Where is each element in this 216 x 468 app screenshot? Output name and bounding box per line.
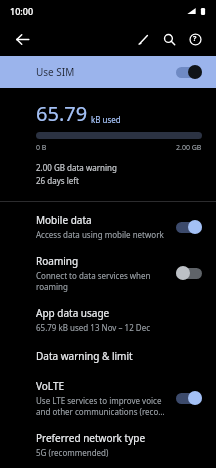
staticText: Mobile data (36, 213, 92, 227)
staticText: Access data using mobile network (36, 229, 164, 240)
button[interactable]: Roaming (0, 247, 216, 299)
staticText: 10:00 (10, 5, 34, 17)
button[interactable]: Data warning & limit (0, 340, 216, 372)
button[interactable]: App data usage (0, 299, 216, 340)
button[interactable]: Edit (130, 26, 156, 52)
staticText: Connect to data services when roaming (36, 270, 170, 292)
staticText: kB used (91, 114, 121, 125)
staticText: Use SIM (36, 65, 75, 79)
button[interactable]: VoLTE (0, 372, 216, 424)
staticText: 65.79 (36, 100, 88, 127)
staticText: 2.00 GB (176, 143, 202, 153)
button[interactable]: 65.79 (0, 88, 216, 196)
button[interactable]: Mobile data (0, 206, 216, 247)
staticText: Preferred network type (36, 431, 146, 445)
button[interactable]: Use SIM (0, 56, 216, 88)
button[interactable]: Back (8, 25, 36, 53)
staticText: 0 B (36, 143, 47, 153)
staticText: ? (193, 34, 197, 44)
staticText: 2.00 GB data warning (36, 162, 117, 173)
button[interactable]: Help (182, 26, 208, 52)
staticText: Use LTE services to improve voice and ot… (36, 395, 170, 417)
staticText: Roaming (36, 254, 79, 268)
button[interactable]: Search (156, 26, 182, 52)
staticText: VoLTE (36, 379, 65, 393)
staticText: Data warning & limit (36, 349, 133, 363)
staticText: App data usage (36, 306, 110, 320)
button[interactable]: Preferred network type (0, 424, 216, 465)
staticText: 65.79 kB used 13 Nov – 12 Dec (36, 322, 151, 333)
staticText: 5G (recommended) (36, 447, 109, 458)
staticText: 26 days left (36, 175, 79, 186)
